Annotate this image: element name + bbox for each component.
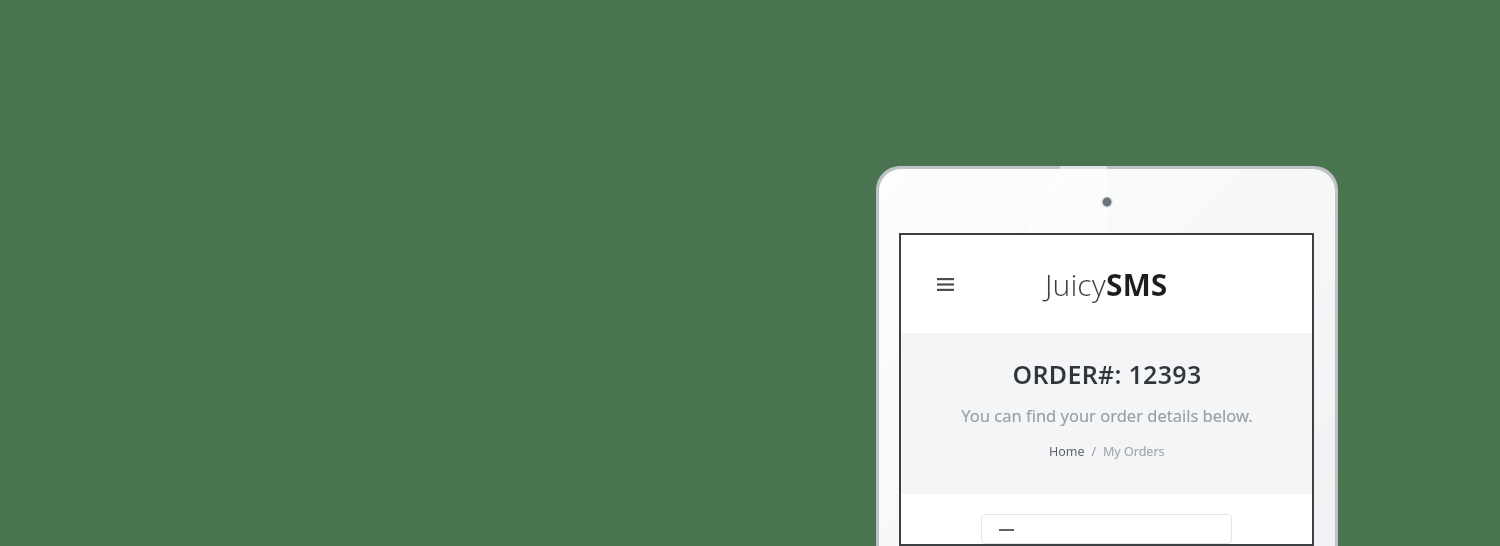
- button[interactable]: Open menu: [931, 270, 959, 298]
- staticText: You can find your order details below.: [961, 404, 1253, 426]
- staticText: My Orders: [1103, 443, 1165, 460]
- staticText: SMS: [1106, 264, 1168, 305]
- button[interactable]: Juicy: [1045, 264, 1168, 305]
- staticText: Juicy: [1045, 264, 1106, 305]
- button[interactable]: Home: [1049, 443, 1085, 460]
- staticText: /: [1085, 443, 1103, 460]
- staticText: Home: [1049, 443, 1085, 460]
- staticText: ORDER#: 12393: [1012, 357, 1202, 391]
- button[interactable]: Created:: [981, 514, 1232, 544]
